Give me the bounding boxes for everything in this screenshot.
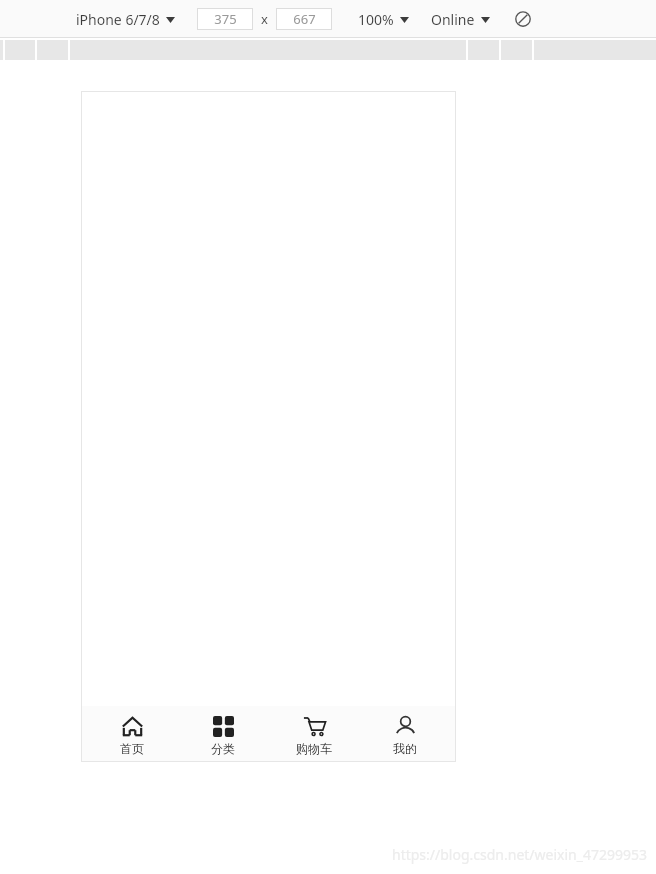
button[interactable]: iPhone 6/7/8 [72,6,179,33]
button[interactable]: Rotate [510,6,536,32]
staticText: 分类 [211,741,235,756]
button[interactable]: Categories [183,710,263,760]
button[interactable]: Profile [365,710,445,760]
staticText: 667 [293,10,316,28]
button[interactable]: Home [92,710,172,760]
button[interactable]: 667 [276,8,332,30]
staticText: 我的 [393,741,417,756]
button[interactable]: 100% [354,6,413,33]
button[interactable]: Cart [274,710,354,760]
button[interactable]: Online [427,6,494,33]
staticText: 购物车 [296,741,332,756]
staticText: Online [431,10,475,29]
staticText: 首页 [120,741,144,756]
staticText: x [261,10,268,28]
staticText: iPhone 6/7/8 [76,10,160,29]
staticText: 375 [214,10,237,28]
button[interactable]: 375 [197,8,253,30]
staticText: 100% [358,10,394,29]
staticText: https://blog.csdn.net/weixin_47299953 [392,845,648,864]
